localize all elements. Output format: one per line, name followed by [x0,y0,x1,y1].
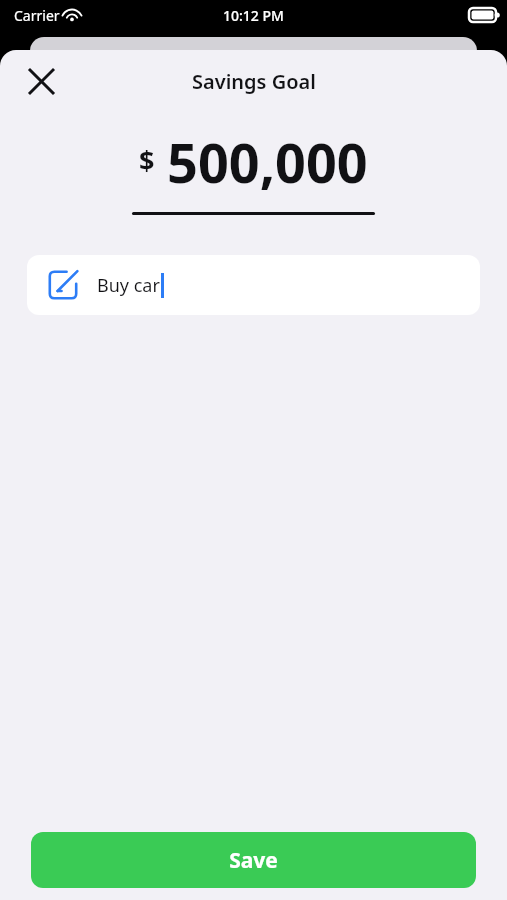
staticText: Carrier [14,6,60,25]
button[interactable]: Save [31,832,476,888]
staticText: Save [229,846,278,875]
staticText: 500,000 [167,125,368,199]
staticText: 10:12 PM [223,6,284,25]
staticText: Buy car [97,273,160,298]
button[interactable]: Buy car [27,255,480,315]
staticText: Savings Goal [192,68,316,95]
staticText: $ [139,142,155,179]
button[interactable]: Close [20,60,62,102]
